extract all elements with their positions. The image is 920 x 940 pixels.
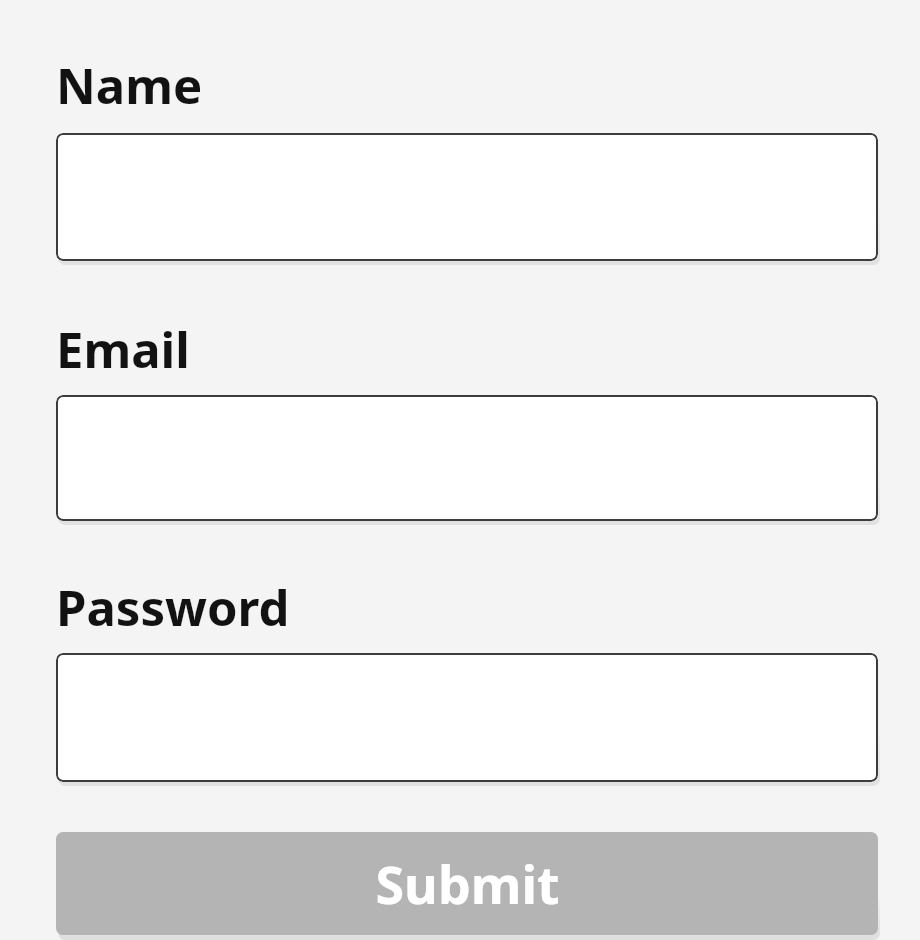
staticText: Email	[56, 316, 190, 383]
staticText: Password	[56, 574, 290, 641]
button[interactable]: Password input field	[56, 653, 878, 782]
button[interactable]: Email input field	[56, 395, 878, 521]
button[interactable]: Submit	[56, 832, 878, 935]
button[interactable]: Name input field	[56, 133, 878, 261]
staticText: Submit	[375, 848, 560, 919]
staticText: Name	[56, 52, 203, 119]
